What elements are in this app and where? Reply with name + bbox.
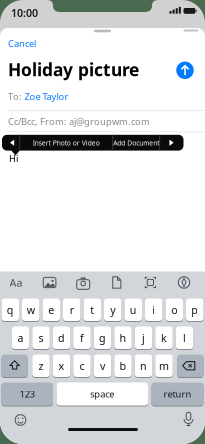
button[interactable]: p <box>186 298 203 322</box>
button[interactable]: Add Document <box>107 135 165 151</box>
staticText: j <box>142 331 145 345</box>
staticText: d <box>58 331 65 345</box>
staticText: s <box>38 331 43 345</box>
button[interactable]: To: <box>8 89 205 103</box>
staticText: f <box>80 331 84 345</box>
button[interactable]: c <box>73 354 91 378</box>
button[interactable]: v <box>94 354 111 378</box>
button[interactable]: e <box>42 298 60 322</box>
staticText: w <box>27 303 35 317</box>
staticText: Aa <box>9 275 22 290</box>
staticText: o <box>171 303 177 317</box>
button[interactable]: h <box>114 326 132 350</box>
button[interactable]: Dictation <box>181 412 195 426</box>
button[interactable]: t <box>83 298 101 322</box>
staticText: space <box>90 388 114 400</box>
button[interactable]: n <box>135 354 152 378</box>
staticText: 10:00 <box>11 6 38 20</box>
button[interactable]: Cc/Bcc, From: aj@groupwm.com <box>8 114 205 128</box>
staticText: h <box>119 331 126 345</box>
staticText: i <box>152 303 155 317</box>
button[interactable]: q <box>1 298 19 322</box>
button[interactable]: Take photo <box>76 276 90 289</box>
button[interactable]: Insert Photo or Video <box>24 135 108 151</box>
button[interactable]: j <box>135 326 152 350</box>
staticText: e <box>48 303 54 317</box>
staticText: Insert Photo or Video <box>33 138 100 147</box>
staticText: Add Document <box>113 138 159 147</box>
button[interactable]: k <box>155 326 173 350</box>
button[interactable]: Format <box>6 275 26 289</box>
staticText: q <box>7 303 14 317</box>
staticText: c <box>79 359 84 373</box>
button[interactable]: f <box>73 326 91 350</box>
button[interactable]: l <box>176 326 193 350</box>
button[interactable]: space <box>56 382 148 406</box>
staticText: y <box>110 303 115 317</box>
staticText: Cancel <box>8 37 36 50</box>
staticText: l <box>183 331 186 345</box>
staticText: Cc/Bcc, From: aj@groupwm.com <box>8 115 150 127</box>
button[interactable]: m <box>155 354 173 378</box>
button[interactable]: z <box>32 354 50 378</box>
button[interactable]: Emoji <box>14 413 27 426</box>
button[interactable]: r <box>63 298 80 322</box>
button[interactable]: Send <box>176 61 194 79</box>
button[interactable]: More menu items <box>163 135 180 151</box>
button[interactable]: 123 <box>1 382 53 406</box>
staticText: z <box>38 359 43 373</box>
button[interactable]: d <box>53 326 70 350</box>
button[interactable]: b <box>114 354 132 378</box>
staticText: Zoe Taylor <box>24 90 68 103</box>
staticText: t <box>90 303 94 317</box>
staticText: return <box>163 388 191 400</box>
button[interactable]: key <box>1 354 28 378</box>
staticText: p <box>191 303 198 317</box>
button[interactable]: Cancel <box>8 37 52 49</box>
button[interactable]: Previous menu items <box>3 135 20 151</box>
button[interactable]: s <box>32 326 50 350</box>
staticText: x <box>58 359 64 373</box>
staticText: r <box>70 303 74 317</box>
staticText: Hi <box>9 152 18 165</box>
staticText: u <box>130 303 137 317</box>
staticText: a <box>17 331 23 345</box>
button[interactable]: Scan document <box>145 277 156 288</box>
button[interactable]: Markup <box>178 276 190 289</box>
button[interactable]: return <box>151 382 203 406</box>
staticText: 123 <box>20 388 35 400</box>
button[interactable]: Attach document <box>111 276 122 289</box>
button[interactable]: w <box>22 298 39 322</box>
staticText: b <box>119 359 126 373</box>
button[interactable]: a <box>12 326 29 350</box>
button[interactable]: o <box>165 298 183 322</box>
staticText: k <box>161 331 167 345</box>
staticText: To: <box>8 90 22 103</box>
staticText: g <box>99 331 106 345</box>
button[interactable]: g <box>94 326 111 350</box>
staticText: n <box>140 359 147 373</box>
button[interactable]: x <box>53 354 70 378</box>
button[interactable]: u <box>124 298 142 322</box>
staticText: Holiday picture <box>8 58 139 81</box>
button[interactable]: y <box>104 298 121 322</box>
button[interactable]: Insert photo <box>43 276 56 289</box>
button[interactable]: i <box>145 298 162 322</box>
button[interactable]: key <box>177 354 203 378</box>
staticText: v <box>100 359 105 373</box>
staticText: m <box>159 359 169 373</box>
